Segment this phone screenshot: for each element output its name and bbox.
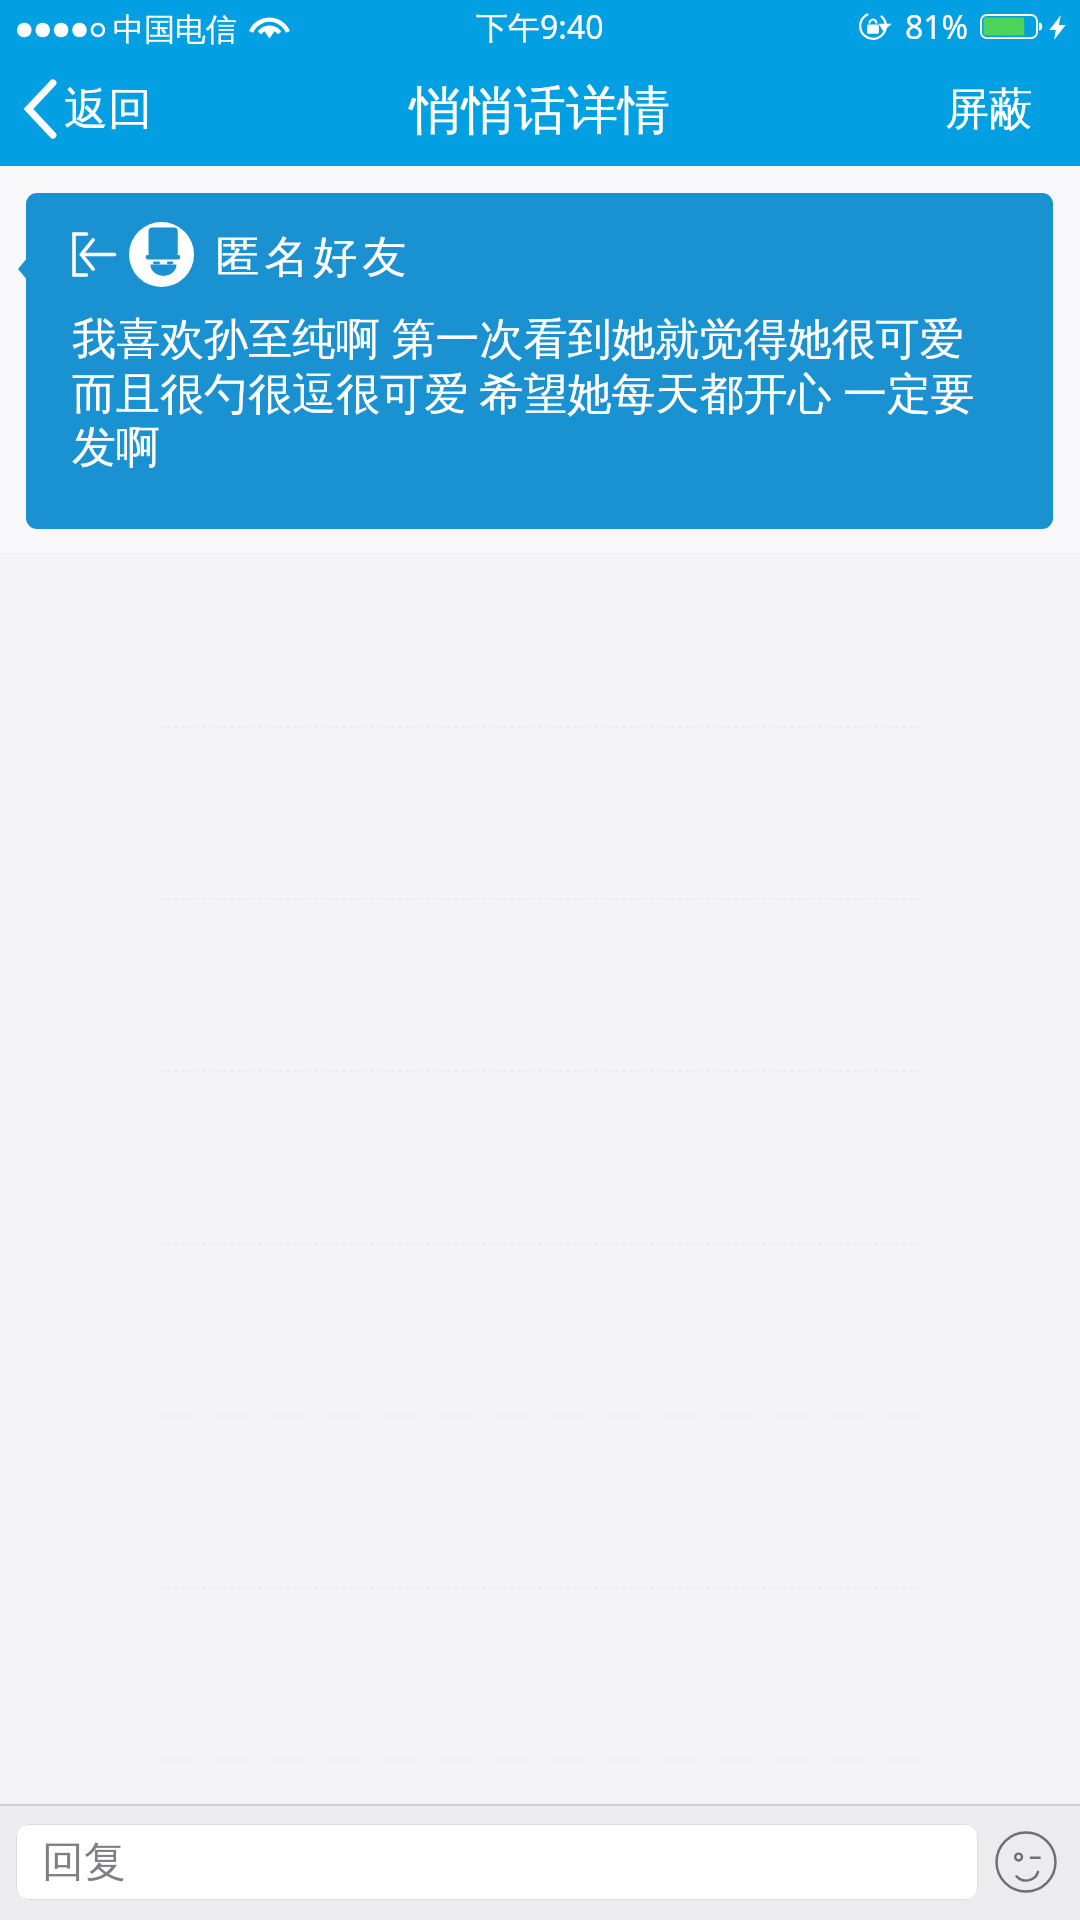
staticText: 匿名好友 [213,230,409,285]
staticText: 81% [905,5,969,49]
staticText: 下午9:40 [476,5,604,49]
staticText: 悄悄话详情 [410,78,670,144]
button[interactable]: 匿名好友 [26,193,1053,529]
button[interactable]: Emoji [992,1828,1060,1896]
staticText: 返回 [64,82,152,137]
staticText: 屏蔽 [945,82,1033,137]
button[interactable]: 返回 [0,58,176,166]
staticText: 我喜欢孙至纯啊 第一次看到她就觉得她很可爱而且很勺很逗很可爱 希望她每天都开心 … [72,307,997,475]
staticText: 回复 [42,1836,126,1889]
staticText: 中国电信 [113,10,237,49]
button[interactable]: 屏蔽 [915,58,1080,166]
button[interactable]: 回复 [16,1824,978,1900]
